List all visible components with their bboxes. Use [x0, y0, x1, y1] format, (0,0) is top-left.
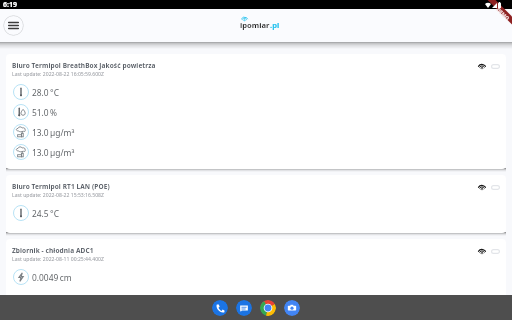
- staticText: Last update: 2022-08-11 00:25:44.400Z: [12, 256, 104, 263]
- staticText: Last update: 2022-08-22 16:05:59.600Z: [12, 71, 104, 78]
- staticText: 24.5 °C: [32, 208, 59, 219]
- staticText: 13.0 µg/m³: [32, 127, 75, 138]
- staticText: DEMO: [495, 6, 511, 23]
- staticText: ipomiar: [240, 20, 270, 30]
- button[interactable]: Phone: [212, 300, 228, 316]
- staticText: 28.0 °C: [32, 87, 59, 98]
- button[interactable]: Biuro Termipol RT1 LAN (POE): [6, 175, 506, 233]
- button[interactable]: Camera: [284, 300, 300, 316]
- staticText: Last update: 2022-08-22 15:53:16.508Z: [12, 192, 104, 199]
- button[interactable]: Chrome: [260, 300, 276, 316]
- staticText: Zbiornik - chłodnia ADC1: [12, 246, 94, 255]
- button[interactable]: Biuro Termipol BreathBox Jakość powietrz…: [6, 54, 506, 169]
- button[interactable]: Zbiornik - chłodnia ADC1: [6, 239, 506, 301]
- button[interactable]: Menu: [3, 15, 24, 36]
- button[interactable]: Messages: [236, 300, 252, 316]
- staticText: 0.0049 cm: [32, 272, 72, 283]
- staticText: Biuro Termipol RT1 LAN (POE): [12, 182, 110, 191]
- staticText: .pl: [270, 20, 280, 30]
- staticText: 13.0 µg/m³: [32, 147, 75, 158]
- staticText: 6:19: [3, 0, 17, 9]
- staticText: Biuro Termipol BreathBox Jakość powietrz…: [12, 61, 156, 70]
- staticText: 51.0 %: [32, 107, 58, 118]
